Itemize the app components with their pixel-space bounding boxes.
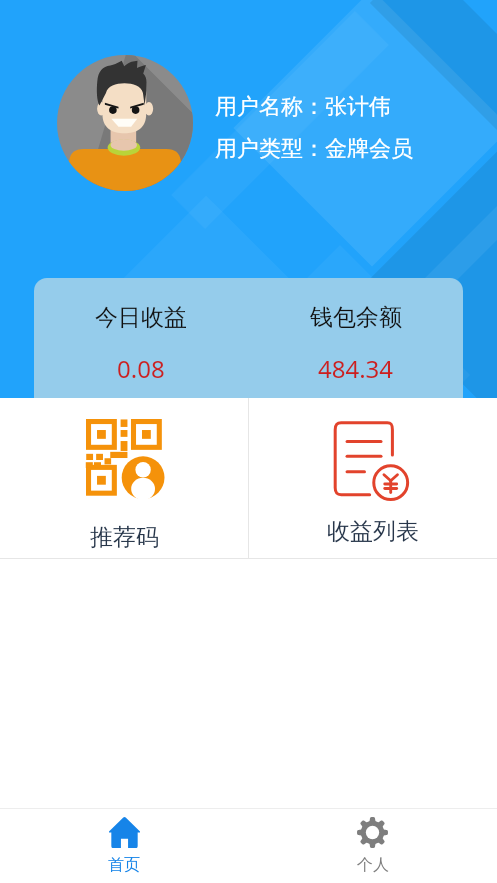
staticText: 484.34 (318, 352, 394, 385)
staticText: 推荐码 (90, 523, 159, 552)
other: 首页 (109, 817, 140, 848)
other: 个人 (357, 817, 388, 848)
staticText: 今日收益 (95, 303, 187, 332)
button[interactable]: 首页 (0, 809, 248, 883)
button[interactable]: 今日收益 (34, 278, 248, 398)
staticText: 钱包余额 (310, 303, 402, 332)
staticText: 用户类型：金牌会员 (215, 135, 413, 163)
button[interactable]: 钱包余额 (248, 278, 463, 398)
staticText: 首页 (108, 855, 140, 875)
button[interactable]: 个人 (248, 809, 497, 883)
staticText: 个人 (357, 855, 389, 875)
button[interactable]: 推荐码 (0, 398, 248, 558)
staticText: 收益列表 (327, 517, 419, 546)
button[interactable]: 收益列表 (249, 398, 497, 558)
staticText: 0.08 (117, 352, 165, 385)
staticText: 用户名称：张计伟 (215, 93, 391, 121)
